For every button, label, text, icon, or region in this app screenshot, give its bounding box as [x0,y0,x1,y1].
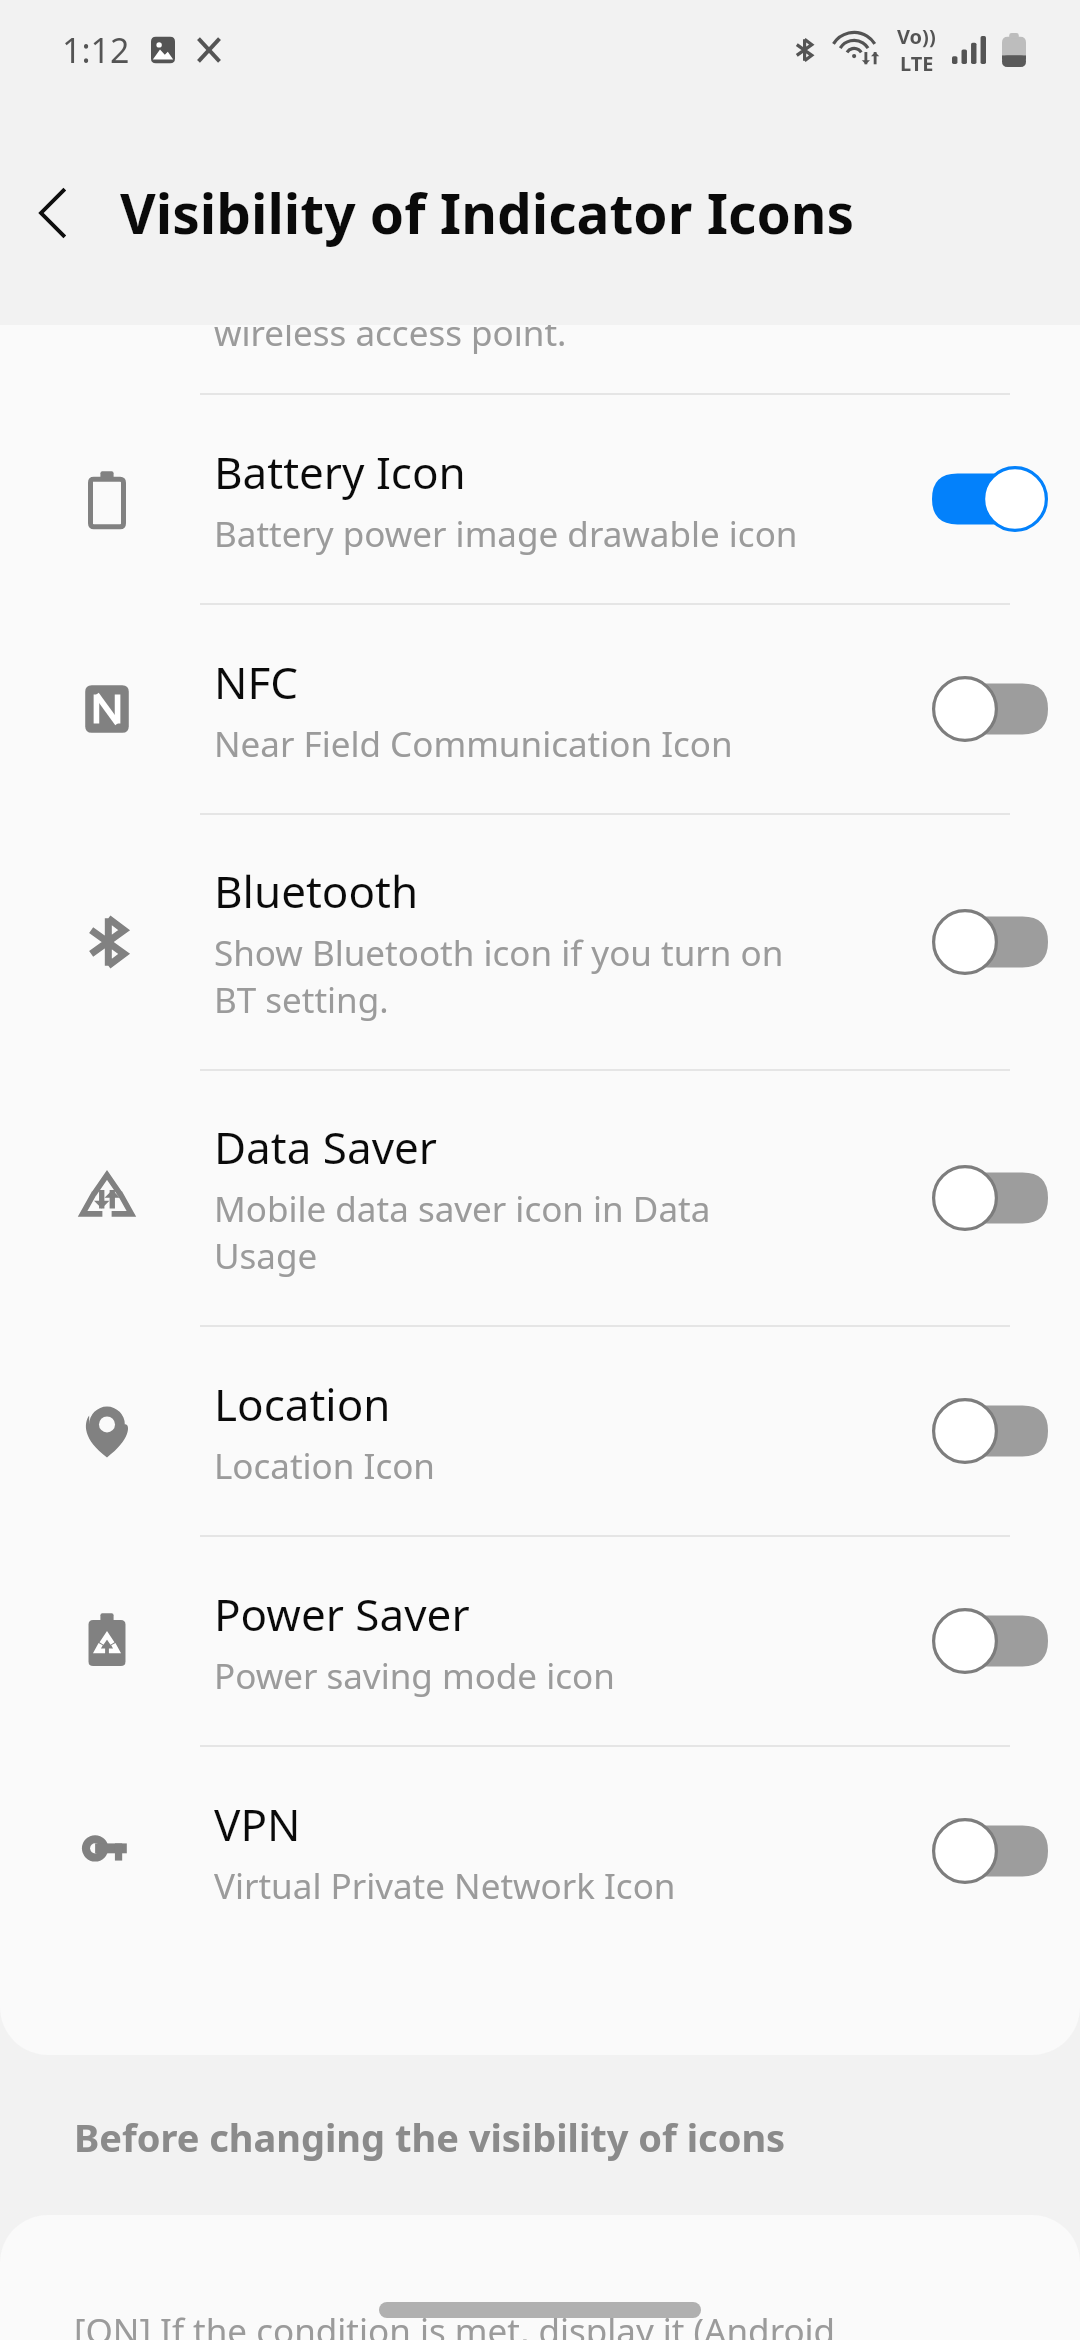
staticText: Bluetooth [214,861,419,921]
staticText: wireless access point. [214,325,567,357]
button[interactable]: VPN switch [900,1747,1080,1955]
button[interactable]: Location [0,1327,1080,1535]
staticText: Virtual Private Network Icon [214,1862,676,1909]
staticText: NFC [214,652,299,712]
button[interactable]: Back [0,159,108,267]
staticText: Data Saver [214,1117,437,1177]
staticText: Location [214,1374,391,1434]
staticText: BT setting. [214,976,389,1023]
staticText: 1:12 [62,27,130,73]
staticText: Mobile data saver icon in Data [214,1185,711,1232]
staticText: Power Saver [214,1584,470,1644]
button[interactable]: Bluetooth [0,815,1080,1069]
staticText: Location Icon [214,1442,435,1489]
button[interactable]: Battery Icon [0,395,1080,603]
button[interactable]: VPN [0,1747,1080,1955]
button[interactable]: Power Saver [0,1537,1080,1745]
staticText: VPN [214,1794,301,1854]
staticText: Before changing the visibility of icons [74,2111,786,2163]
button[interactable]: Data Saver [0,1071,1080,1325]
button[interactable]: NFC switch [900,605,1080,813]
button[interactable]: NFC [0,605,1080,813]
staticText: Show Bluetooth icon if you turn on [214,929,784,976]
button[interactable]: Location switch [900,1327,1080,1535]
staticText: Power saving mode icon [214,1652,615,1699]
staticText: Vo)) [897,23,936,50]
staticText: Usage [214,1232,318,1279]
button[interactable]: Bluetooth switch [900,815,1080,1069]
button[interactable]: Data Saver switch [900,1071,1080,1325]
button[interactable]: Power Saver switch [900,1537,1080,1745]
staticText: Near Field Communication Icon [214,720,733,767]
button[interactable]: Battery Icon switch [900,395,1080,603]
staticText: Battery power image drawable icon [214,510,798,557]
staticText: [ON] If the condition is met, display it… [74,2307,836,2340]
staticText: Battery Icon [214,442,466,502]
staticText: Visibility of Indicator Icons [120,175,855,250]
staticText: LTE [900,50,934,77]
